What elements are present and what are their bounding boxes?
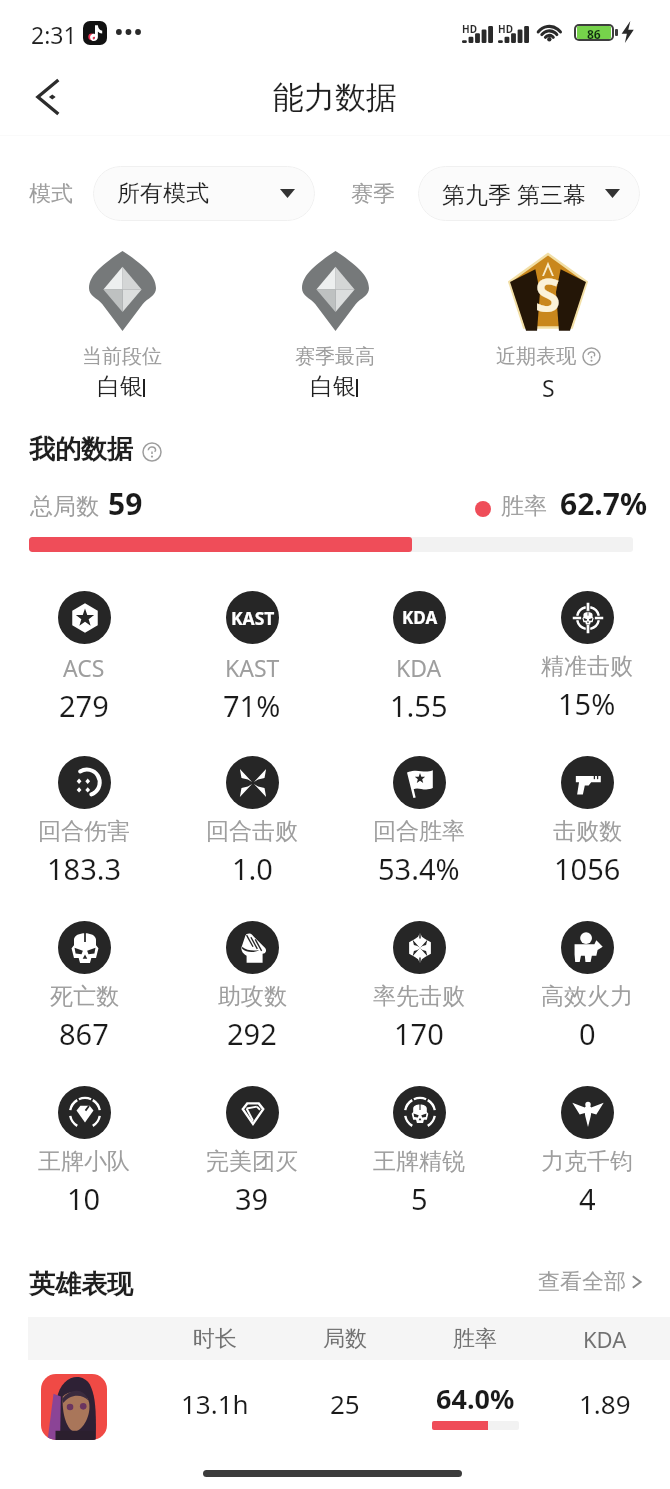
button[interactable]: 力克千钧 [503,1086,670,1236]
staticText: HD [498,22,513,36]
staticText: 13.1h [181,1386,249,1421]
staticText: 1.89 [579,1386,631,1421]
staticText: 精准击败 [541,652,633,681]
staticText: 15% [558,684,616,723]
staticText: 赛季 [351,180,395,208]
staticText: 1.0 [232,849,273,888]
staticText: 25 [330,1386,360,1421]
button[interactable]: 率先击败 [335,921,503,1071]
staticText: 局数 [323,1325,367,1353]
staticText: 胜率 [453,1325,497,1353]
staticText: 1.55 [390,686,448,725]
button[interactable]: KAST [168,591,336,741]
staticText: 回合伤害 [38,817,130,846]
button[interactable]: 助攻数 [168,921,336,1071]
staticText: 助攻数 [218,982,287,1011]
staticText: 胜率 [501,492,547,521]
staticText: 完美团灭 [206,1147,298,1176]
button[interactable]: 所有模式 [93,166,315,221]
staticText: 王牌小队 [38,1147,130,1176]
staticText: 当前段位 [82,344,162,369]
staticText: 击败数 [553,817,622,846]
button[interactable]: KDA [335,591,503,741]
staticText: 183.3 [47,849,122,888]
staticText: 死亡数 [50,982,119,1011]
staticText: 能力数据 [273,78,397,117]
button[interactable]: 查看全部 [538,1268,643,1296]
staticText: 86 [587,26,601,39]
staticText: 10 [67,1179,101,1218]
staticText: S [535,263,561,326]
staticText: 高效火力 [541,982,633,1011]
button[interactable]: 死亡数 [0,921,168,1071]
staticText: KDA [396,652,442,683]
staticText: 所有模式 [117,179,209,208]
staticText: 率先击败 [373,982,465,1011]
staticText: 59 [108,483,143,524]
staticText: 白银 [310,372,356,401]
staticText: 279 [59,686,109,725]
button[interactable]: 击败数 [503,756,670,906]
staticText: KDA [402,606,438,629]
button[interactable]: 完美团灭 [168,1086,336,1236]
staticText: 39 [235,1179,269,1218]
staticText: 2:31 [31,19,77,50]
button[interactable]: 王牌精锐 [335,1086,503,1236]
button[interactable]: 回合击败 [168,756,336,906]
staticText: 时长 [193,1325,237,1353]
button[interactable]: 第九季 第三幕 [418,166,640,221]
staticText: KAST [231,606,275,630]
staticText: 64.0% [436,1380,515,1417]
staticText: 53.4% [378,849,460,888]
staticText: 查看全部 [538,1268,626,1296]
staticText: 71% [223,686,281,725]
staticText: 近期表现 [496,344,576,369]
button[interactable]: Back [14,64,80,130]
button[interactable]: 高效火力 [503,921,670,1071]
button[interactable]: 王牌小队 [0,1086,168,1236]
staticText: 力克千钧 [541,1147,633,1176]
button[interactable]: 回合胜率 [335,756,503,906]
staticText: 我的数据 [29,433,133,466]
staticText: 170 [394,1014,444,1053]
staticText: 英雄表现 [29,1268,133,1301]
staticText: 0 [579,1014,596,1053]
staticText: 模式 [29,180,73,208]
staticText: KDA [583,1324,627,1354]
staticText: 62.7% [560,483,647,524]
staticText: KAST [225,652,280,683]
staticText: 总局数 [30,492,99,521]
staticText: 867 [59,1014,109,1053]
button[interactable]: 精准击败 [503,591,670,741]
staticText: 292 [227,1014,277,1053]
button[interactable]: 回合伤害 [0,756,168,906]
button[interactable]: ACS [0,591,168,741]
staticText: 4 [579,1179,596,1218]
staticText: ACS [63,652,105,683]
staticText: S [542,372,555,403]
staticText: 回合胜率 [373,817,465,846]
staticText: 回合击败 [206,817,298,846]
staticText: 王牌精锐 [373,1147,465,1176]
staticText: 第九季 第三幕 [442,178,586,209]
staticText: 1056 [554,849,621,888]
staticText: 5 [411,1179,428,1218]
staticText: 赛季最高 [295,344,375,369]
staticText: 白银 [97,372,143,401]
staticText: HD [462,22,477,36]
